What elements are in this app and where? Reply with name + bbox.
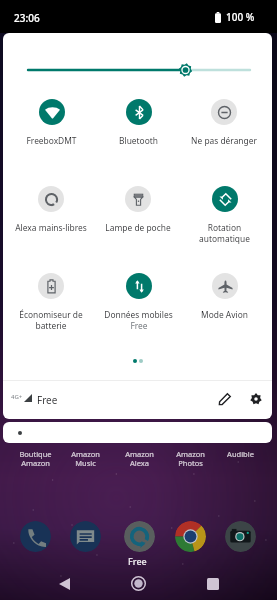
button[interactable]: App <box>225 521 256 552</box>
staticText: 23:06 <box>14 11 40 25</box>
button[interactable]: Alexa mains-libres <box>8 186 94 248</box>
staticText: Audible <box>227 449 254 459</box>
button[interactable]: App <box>20 521 51 552</box>
staticText: Alexa mains-libres <box>15 222 87 233</box>
staticText: Rotation automatique <box>199 222 250 244</box>
button[interactable]: Lampe de poche <box>95 186 181 248</box>
button[interactable]: Bluetooth <box>95 99 181 161</box>
button[interactable]: App <box>70 521 101 552</box>
button[interactable]: Amazon Photos <box>164 449 216 471</box>
button[interactable] <box>3 422 272 443</box>
button[interactable]: FreeboxDMT <box>8 99 94 161</box>
staticText: FreeboxDMT <box>26 135 77 146</box>
staticText: Amazon Photos <box>176 449 205 469</box>
staticText: Économiseur de batterie <box>19 309 83 331</box>
staticText: Lampe de poche <box>105 222 171 233</box>
button[interactable]: Retour <box>52 571 77 596</box>
button[interactable]: Ne pas déranger <box>181 99 267 161</box>
button[interactable]: App <box>124 521 155 552</box>
button[interactable]: Rotation automatique <box>181 186 267 248</box>
staticText: Bluetooth <box>119 135 158 146</box>
staticText: Free <box>130 320 148 331</box>
button[interactable]: App <box>175 521 206 552</box>
staticText: Ne pas déranger <box>191 135 257 146</box>
button[interactable]: Applications recentes <box>200 571 225 596</box>
staticText: Free <box>128 555 147 567</box>
button[interactable]: Mode Avion <box>181 273 267 335</box>
button[interactable]: Amazon Alexa <box>113 449 165 471</box>
staticText: Free <box>37 393 58 407</box>
staticText: Amazon Music <box>71 449 100 469</box>
staticText: Boutique Amazon <box>19 449 52 469</box>
button[interactable]: Modifier <box>212 386 238 412</box>
staticText: Données mobiles <box>104 309 173 320</box>
staticText: 4G+ <box>11 393 23 401</box>
button[interactable]: Données mobiles <box>95 273 181 335</box>
staticText: Amazon Alexa <box>125 449 154 469</box>
button[interactable]: Boutique Amazon <box>9 449 61 471</box>
staticText: 100 % <box>226 10 255 24</box>
button[interactable]: Accueil <box>126 571 151 596</box>
button[interactable]: Audible <box>214 449 266 471</box>
button[interactable]: Paramètres <box>243 386 269 412</box>
button[interactable]: Économiseur de batterie <box>8 273 94 335</box>
staticText: Mode Avion <box>201 309 248 320</box>
button[interactable]: Amazon Music <box>59 449 111 471</box>
